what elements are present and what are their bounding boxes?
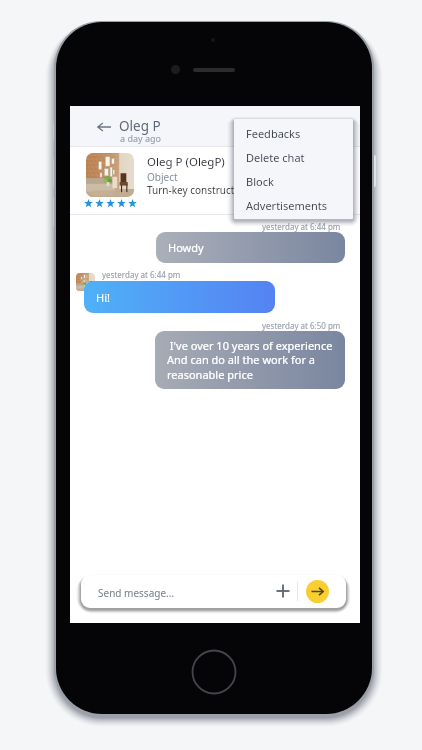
- staticText: yesterday at 6:44 pm: [262, 221, 341, 232]
- staticText: Turn-key construction: [147, 183, 250, 197]
- button[interactable]: I've over 10 years of experience And can…: [155, 331, 345, 389]
- button[interactable]: [87, 114, 217, 142]
- staticText: yesterday at 6:50 pm: [262, 320, 341, 331]
- staticText: Delete chat: [246, 150, 305, 165]
- staticText: Feedbacks: [246, 126, 301, 141]
- staticText: Oleg P: [119, 117, 161, 135]
- staticText: I've over 10 years of experience And can…: [167, 338, 333, 383]
- button[interactable]: Delete chat: [234, 145, 353, 169]
- staticText: Howdy: [168, 240, 204, 255]
- button[interactable]: Attach: [273, 581, 293, 601]
- button[interactable]: Advertisements: [234, 193, 353, 217]
- staticText: Oleg P (OlegP): [147, 154, 225, 170]
- staticText: yesterday at 6:44 pm: [102, 269, 181, 280]
- button[interactable]: Feedbacks: [234, 121, 353, 145]
- staticText: Hi!: [96, 290, 110, 305]
- button[interactable]: Back: [95, 118, 113, 136]
- button[interactable]: Howdy: [156, 232, 345, 263]
- staticText: Block: [246, 174, 274, 189]
- staticText: a day ago: [120, 132, 161, 144]
- button[interactable]: Block: [234, 169, 353, 193]
- button[interactable]: Send: [306, 580, 329, 603]
- button[interactable]: Hi!: [84, 281, 275, 313]
- staticText: Advertisements: [246, 198, 327, 213]
- staticText: Send message...: [98, 586, 175, 600]
- staticText: Object: [147, 170, 178, 184]
